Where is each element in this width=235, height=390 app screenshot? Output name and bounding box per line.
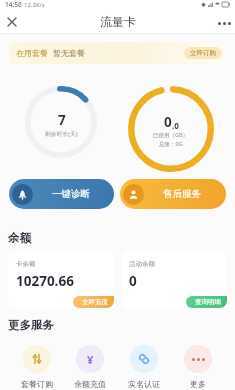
staticText: 0 xyxy=(129,272,137,290)
staticText: 更多服务 xyxy=(8,318,54,332)
staticText: 7 xyxy=(58,111,66,129)
button[interactable]: More options xyxy=(215,14,233,32)
button[interactable]: ¥ xyxy=(63,345,117,389)
button[interactable]: Close xyxy=(4,14,20,30)
staticText: 实名认证 xyxy=(128,379,160,389)
staticText: 一键诊断 xyxy=(52,188,90,200)
staticText: 暂无套餐 xyxy=(53,48,85,58)
button[interactable]: 活动余额 xyxy=(121,251,227,308)
staticText: 总量：0G xyxy=(159,140,183,148)
button[interactable]: 实名认证 xyxy=(117,345,171,389)
staticText: 10270.66 xyxy=(16,272,74,290)
button[interactable]: 一键诊断 xyxy=(9,179,114,209)
staticText: 套餐订购 xyxy=(21,379,53,389)
staticText: 活动余额 xyxy=(129,260,155,268)
staticText: 卡余额 xyxy=(16,260,36,268)
staticText: 14:56 xyxy=(5,0,22,9)
staticText: 余额 xyxy=(8,231,31,245)
staticText: 剩余时长(天) xyxy=(45,130,78,138)
staticText: 12.2K/s xyxy=(24,1,45,9)
staticText: 在用套餐 xyxy=(16,48,48,58)
staticText: 查询明细 xyxy=(195,298,221,306)
button[interactable]: 更多 xyxy=(171,345,225,389)
staticText: 更多 xyxy=(190,379,206,389)
staticText: .0 xyxy=(172,120,179,131)
staticText: 流量卡 xyxy=(100,14,136,29)
staticText: 0 xyxy=(164,113,172,131)
staticText: 立即订购 xyxy=(190,49,216,57)
button[interactable]: 卡余额 xyxy=(8,251,114,308)
button[interactable]: 售后服务 xyxy=(120,179,226,209)
staticText: 立即充值 xyxy=(82,298,108,306)
staticText: ¥ xyxy=(87,352,94,367)
button[interactable]: 在用套餐 xyxy=(9,42,226,64)
staticText: 已使用（GB） xyxy=(153,131,189,139)
button[interactable]: 套餐订购 xyxy=(10,345,63,389)
staticText: 余额充值 xyxy=(74,379,106,389)
staticText: 售后服务 xyxy=(163,188,201,200)
